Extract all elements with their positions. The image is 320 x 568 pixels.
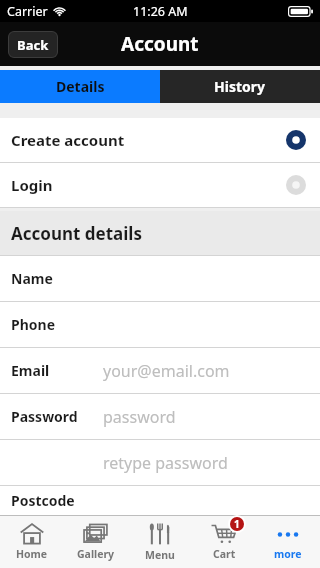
button[interactable]: Cart xyxy=(192,516,256,568)
staticText: Back xyxy=(17,36,49,54)
staticText: Password xyxy=(11,407,78,426)
button[interactable]: Email xyxy=(0,348,320,393)
button[interactable]: Details xyxy=(0,70,160,103)
staticText: Carrier xyxy=(7,3,48,20)
staticText: retype password xyxy=(103,452,228,474)
staticText: Account details xyxy=(11,222,142,245)
button[interactable]: Create account xyxy=(0,118,320,162)
staticText: password xyxy=(103,406,176,428)
staticText: Account xyxy=(121,31,199,57)
staticText: Phone xyxy=(11,315,56,334)
staticText: Email xyxy=(11,361,50,380)
button[interactable]: Postcode xyxy=(0,486,320,515)
button[interactable]: Menu xyxy=(128,516,192,568)
button[interactable]: Home xyxy=(0,516,64,568)
staticText: your@email.com xyxy=(103,360,230,382)
staticText: Name xyxy=(11,269,53,288)
staticText: 1 xyxy=(234,517,240,531)
button[interactable]: Gallery xyxy=(64,516,128,568)
button[interactable]: Back xyxy=(8,31,58,58)
staticText: Create account xyxy=(11,130,125,150)
staticText: History xyxy=(214,77,266,96)
staticText: Gallery xyxy=(77,547,115,561)
staticText: Login xyxy=(11,175,53,195)
button[interactable]: more xyxy=(256,516,320,568)
staticText: Postcode xyxy=(11,491,75,510)
staticText: Details xyxy=(56,77,105,96)
button[interactable]: History xyxy=(160,70,320,103)
button[interactable]: Login xyxy=(0,163,320,207)
staticText: 11:26 AM xyxy=(133,3,188,20)
staticText: Home xyxy=(16,547,48,561)
button[interactable]: retype password xyxy=(0,440,320,485)
staticText: Menu xyxy=(145,548,175,562)
button[interactable]: Phone xyxy=(0,302,320,347)
staticText: more xyxy=(274,547,302,561)
button[interactable]: Password xyxy=(0,394,320,439)
staticText: Cart xyxy=(213,547,236,561)
button[interactable]: Name xyxy=(0,256,320,301)
